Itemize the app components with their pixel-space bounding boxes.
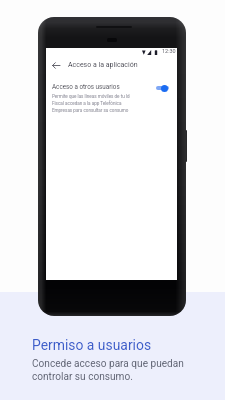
button[interactable]: Acceso a otros usuarios	[152, 80, 174, 97]
staticText: 12:30	[162, 48, 176, 54]
staticText: Permite que las líneas móviles de tu Id …	[52, 94, 130, 113]
button[interactable]: Permiso a usuarios	[32, 337, 152, 353]
button[interactable]: Acceso a otros usuarios	[52, 83, 120, 90]
button[interactable]: Atrás	[50, 59, 62, 71]
staticText: Acceso a la aplicación	[68, 61, 138, 69]
staticText: Concede acceso para que puedan controlar…	[32, 358, 184, 383]
